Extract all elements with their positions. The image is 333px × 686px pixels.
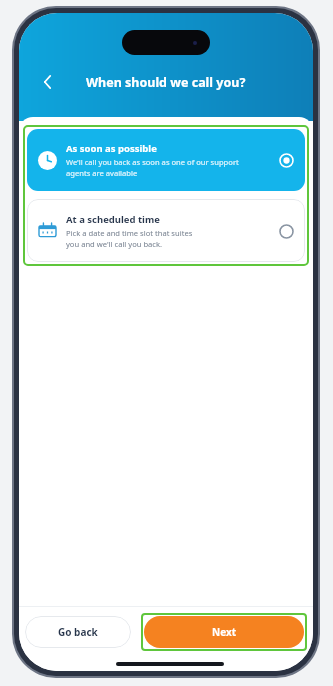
button[interactable]: Go back <box>25 616 131 648</box>
staticText: Go back <box>58 625 98 639</box>
button[interactable]: Next <box>144 616 304 648</box>
button[interactable]: As soon as possible <box>27 129 305 191</box>
staticText: Pick a date and time slot that suites yo… <box>66 228 193 249</box>
button[interactable]: At a scheduled time <box>27 199 305 262</box>
staticText: As soon as possible <box>66 142 157 155</box>
staticText: We'll call you back as soon as one of ou… <box>66 157 239 178</box>
staticText: Next <box>212 625 237 639</box>
button[interactable]: Back <box>31 65 65 99</box>
staticText: When should we call you? <box>86 74 246 91</box>
staticText: At a scheduled time <box>66 213 160 226</box>
